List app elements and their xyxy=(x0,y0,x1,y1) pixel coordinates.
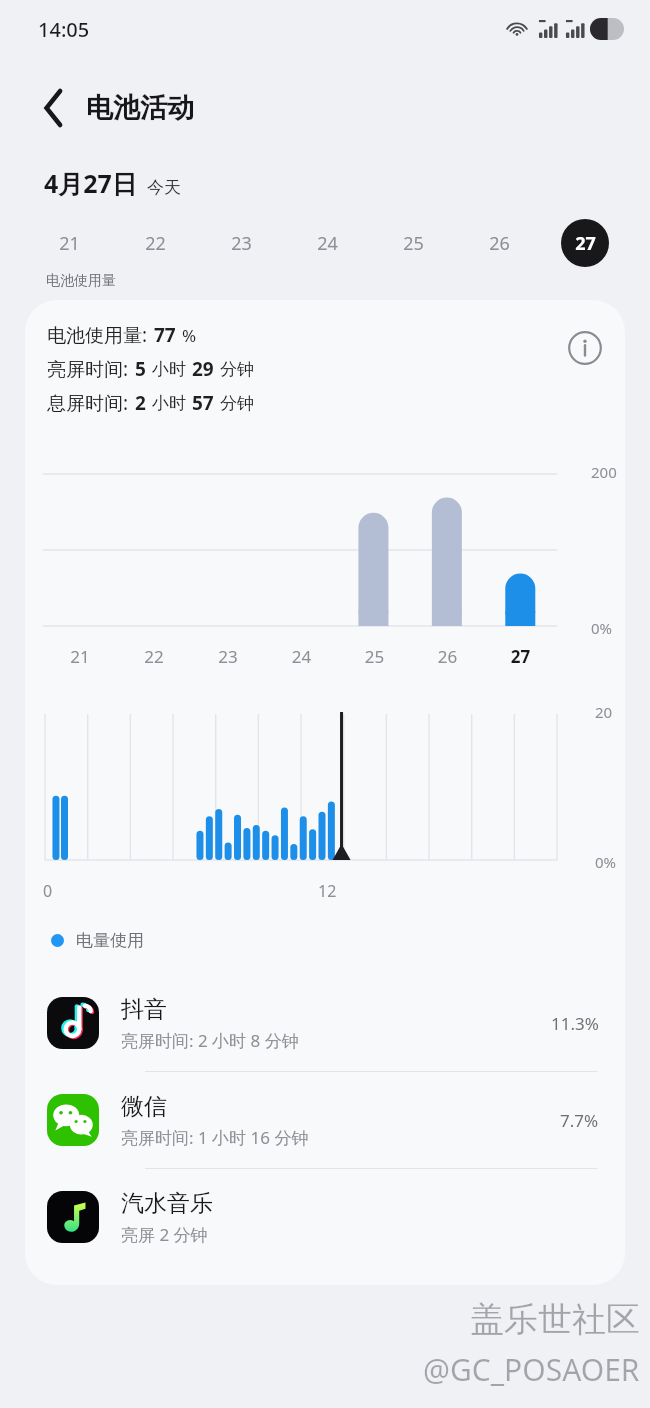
staticText: 0% xyxy=(591,618,613,638)
staticText: 24 xyxy=(317,231,338,256)
button[interactable]: 27 xyxy=(542,216,628,270)
staticText: 21 xyxy=(43,645,117,668)
button[interactable]: 抖音 xyxy=(25,975,625,1071)
staticText: 27 xyxy=(484,645,557,668)
staticText: 抖音 xyxy=(121,995,167,1024)
staticText: @GC_POSAOER xyxy=(423,1349,640,1390)
staticText: 盖乐世社区 xyxy=(470,1298,640,1341)
staticText: % xyxy=(182,324,197,347)
button[interactable]: 21 xyxy=(26,216,112,270)
staticText: 4月27日 xyxy=(44,166,137,200)
staticText: 亮屏时间: xyxy=(47,356,129,382)
staticText: 29 xyxy=(192,356,214,382)
staticText: 24 xyxy=(265,645,338,668)
staticText: 亮屏时间: 1 小时 16 分钟 xyxy=(121,1126,309,1149)
staticText: 息屏时间: xyxy=(47,390,129,416)
staticText: 微信 xyxy=(121,1092,167,1121)
staticText: 2 xyxy=(135,390,146,416)
staticText: 27 xyxy=(575,231,596,256)
staticText: 小时 xyxy=(152,393,186,414)
button[interactable]: 汽水音乐 xyxy=(25,1169,625,1265)
button[interactable]: 24 xyxy=(284,216,370,270)
staticText: 77 xyxy=(154,322,176,348)
staticText: 26 xyxy=(489,231,510,256)
button[interactable]: Information xyxy=(565,328,605,368)
staticText: 0 xyxy=(43,880,53,902)
staticText: 200 xyxy=(591,462,617,482)
staticText: 5 xyxy=(135,356,146,382)
staticText: 亮屏时间: 2 小时 8 分钟 xyxy=(121,1029,299,1052)
staticText: 电池使用量 xyxy=(46,272,116,290)
staticText: 分钟 xyxy=(220,393,254,414)
staticText: 小时 xyxy=(152,359,186,380)
staticText: 23 xyxy=(231,231,252,256)
staticText: 12 xyxy=(318,880,337,902)
staticText: 26 xyxy=(411,645,484,668)
staticText: 57 xyxy=(192,390,214,416)
staticText: 今天 xyxy=(147,177,181,198)
staticText: 14:05 xyxy=(38,16,90,43)
button[interactable]: 25 xyxy=(370,216,456,270)
staticText: 电池使用量: xyxy=(47,322,148,348)
button[interactable]: 22 xyxy=(112,216,198,270)
button[interactable]: 26 xyxy=(456,216,542,270)
staticText: 汽水音乐 xyxy=(121,1189,213,1218)
staticText: 亮屏 2 分钟 xyxy=(121,1223,208,1246)
staticText: 21 xyxy=(59,231,80,256)
staticText: 11.3% xyxy=(551,1012,599,1035)
staticText: 25 xyxy=(338,645,411,668)
staticText: 电池活动 xyxy=(86,91,194,125)
staticText: 20 xyxy=(595,702,613,722)
staticText: 分钟 xyxy=(220,359,254,380)
staticText: 电量使用 xyxy=(76,930,144,951)
button[interactable]: Back xyxy=(26,80,82,136)
staticText: 22 xyxy=(145,231,166,256)
staticText: 22 xyxy=(117,645,191,668)
button[interactable]: 23 xyxy=(198,216,284,270)
button[interactable]: 微信 xyxy=(25,1072,625,1168)
staticText: 7.7% xyxy=(560,1109,599,1132)
staticText: 23 xyxy=(191,645,265,668)
staticText: 25 xyxy=(403,231,424,256)
staticText: 0% xyxy=(595,852,617,872)
